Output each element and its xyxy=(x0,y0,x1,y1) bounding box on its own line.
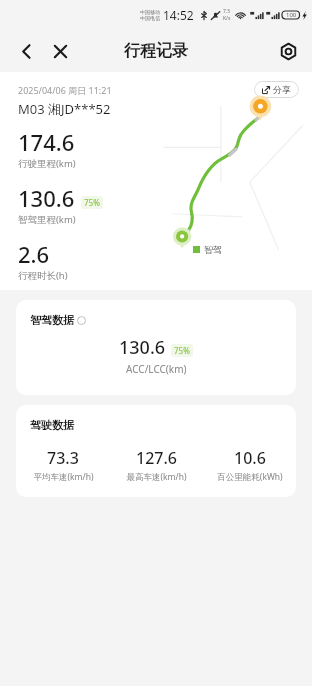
button[interactable]: 73.3 xyxy=(16,447,110,483)
button[interactable]: 智驾数据 xyxy=(16,300,296,395)
staticText: 2.6 xyxy=(18,239,50,269)
staticText: 73.3 xyxy=(47,447,79,469)
button[interactable]: 设置 xyxy=(273,36,303,66)
staticText: 10.6 xyxy=(234,447,266,469)
staticText: 智驾 xyxy=(204,244,222,255)
staticText: 130.6 xyxy=(119,335,166,360)
staticText: 驾驶数据 xyxy=(30,418,74,432)
button[interactable]: 返回 xyxy=(11,36,41,66)
staticText: 最高车速(km/h) xyxy=(126,471,187,483)
button[interactable]: 127.6 xyxy=(110,447,203,483)
staticText: 130.6 xyxy=(18,183,75,213)
staticText: 百公里能耗(kWh) xyxy=(217,471,283,483)
staticText: 分享 xyxy=(273,84,291,95)
staticText: 平均车速(km/h) xyxy=(33,471,94,483)
staticText: 127.6 xyxy=(136,447,177,469)
button[interactable]: 分享 xyxy=(254,81,299,98)
staticText: 75% xyxy=(84,197,100,208)
staticText: K/s xyxy=(223,15,231,22)
button[interactable]: 10.6 xyxy=(203,447,296,483)
staticText: 75% xyxy=(174,345,190,356)
staticText: 14:52 xyxy=(163,7,194,23)
staticText: 中国电信 xyxy=(140,15,160,21)
staticText: M03 湘JD***52 xyxy=(18,100,111,118)
staticText: 行驶里程(km) xyxy=(18,157,76,170)
staticText: 行程记录 xyxy=(124,41,188,61)
button[interactable]: 关闭 xyxy=(45,36,75,66)
staticText: 2025/04/06 周日 11:21 xyxy=(18,84,112,96)
staticText: 中国移动 xyxy=(140,9,160,15)
staticText: 7.5 xyxy=(223,8,231,15)
staticText: 174.6 xyxy=(18,127,75,157)
staticText: ACC/LCC(km) xyxy=(126,362,187,376)
staticText: 智驾数据 xyxy=(30,313,74,327)
staticText: 行程时长(h) xyxy=(18,269,68,282)
staticText: 智驾里程(km) xyxy=(18,213,76,226)
staticText: 100 xyxy=(286,11,297,19)
